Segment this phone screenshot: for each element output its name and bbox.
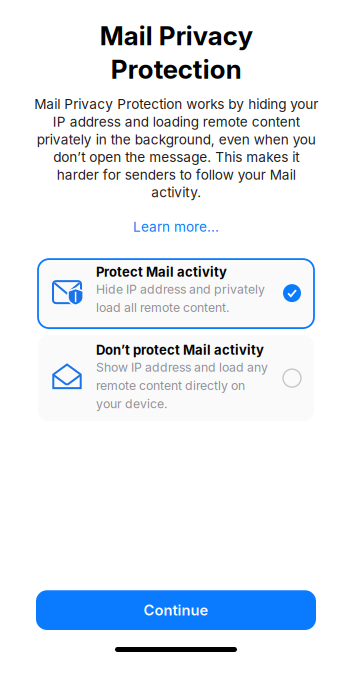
staticText: Mail Privacy Protection — [99, 20, 252, 85]
button[interactable]: Protect Mail activity — [38, 259, 314, 328]
staticText: Don’t protect Mail activity — [96, 342, 264, 358]
staticText: Hide IP address and privately load all r… — [96, 282, 265, 315]
button[interactable]: Learn more... — [123, 214, 229, 240]
button[interactable]: Don’t protect Mail activity — [38, 335, 314, 421]
button[interactable]: Continue — [36, 590, 316, 630]
staticText: Learn more... — [133, 219, 219, 235]
staticText: Protect Mail activity — [96, 264, 227, 280]
staticText: Continue — [143, 601, 208, 619]
staticText: Mail Privacy Protection works by hiding … — [34, 96, 318, 201]
staticText: Show IP address and load any remote cont… — [96, 360, 268, 411]
